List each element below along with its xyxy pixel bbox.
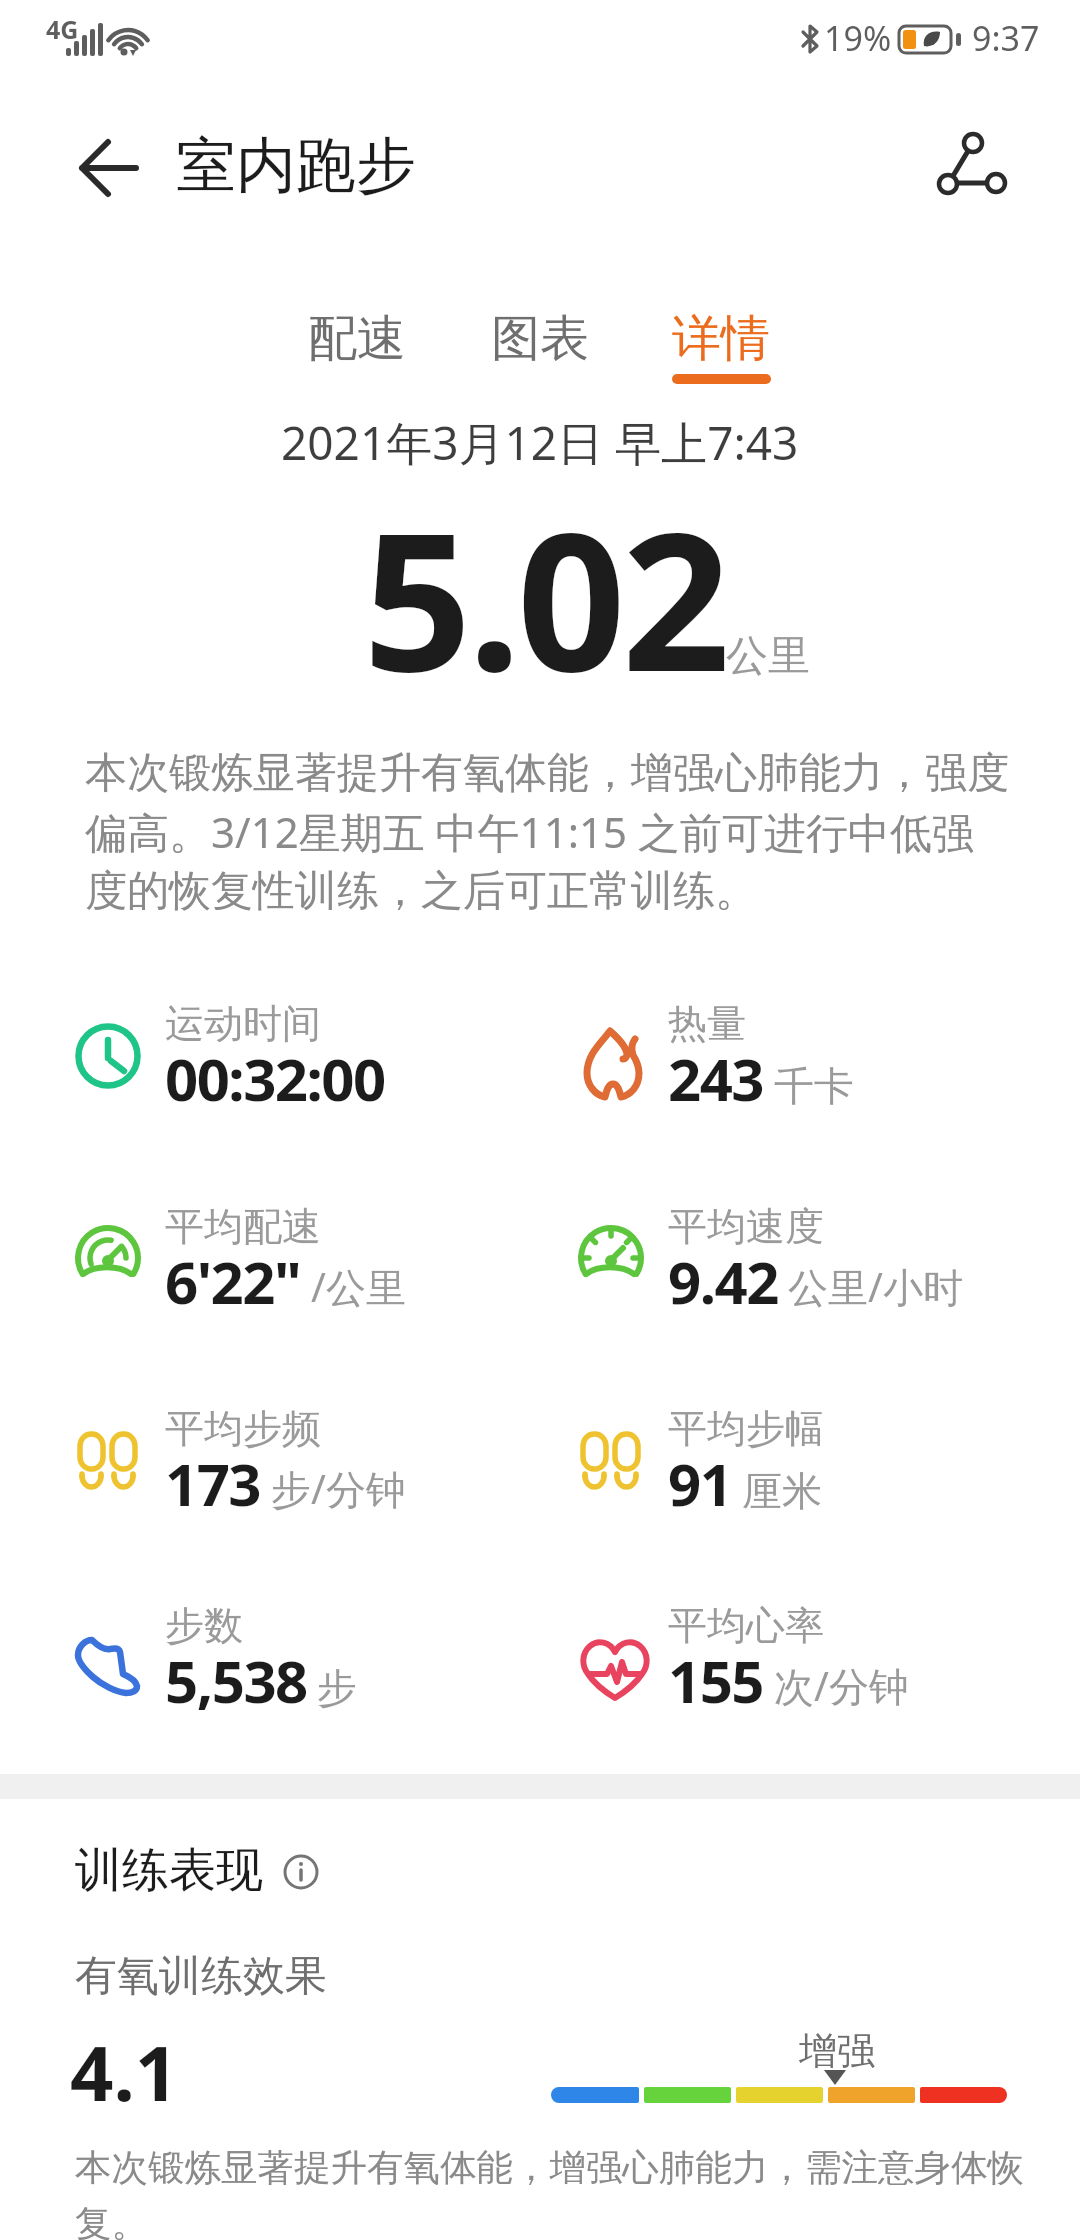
- staticText: 详情: [672, 308, 770, 370]
- staticText: 平均配速: [165, 1202, 321, 1251]
- staticText: 平均步幅: [668, 1404, 824, 1453]
- button[interactable]: [283, 1854, 323, 1894]
- button[interactable]: 图表: [190, 308, 890, 370]
- button[interactable]: 配速: [7, 308, 707, 370]
- staticText: 4G: [46, 12, 79, 46]
- staticText: 步数: [165, 1601, 243, 1650]
- staticText: 有氧训练效果: [75, 1950, 327, 2003]
- staticText: 热量: [668, 999, 746, 1048]
- staticText: 厘米: [742, 1466, 822, 1516]
- staticText: 千卡: [774, 1061, 854, 1111]
- staticText: 训练表现: [75, 1841, 263, 1900]
- staticText: 243: [668, 1039, 764, 1118]
- staticText: 步/分钟: [271, 1461, 406, 1516]
- staticText: 室内跑步: [176, 128, 416, 204]
- staticText: 配速: [308, 308, 406, 370]
- staticText: 次/分钟: [774, 1658, 909, 1713]
- staticText: 平均速度: [668, 1202, 824, 1251]
- staticText: 9.42: [668, 1242, 778, 1321]
- staticText: 2021年3月12日 早上7:43: [281, 411, 799, 474]
- staticText: 步: [317, 1663, 357, 1713]
- staticText: 公里/小时: [788, 1259, 963, 1314]
- staticText: 19%: [824, 15, 892, 61]
- staticText: 本次锻炼显著提升有氧体能，增强心肺能力，需注意身体恢 复。: [75, 2145, 1024, 2240]
- button[interactable]: [920, 120, 1030, 220]
- staticText: 6'22": [165, 1242, 301, 1321]
- staticText: 9:37: [972, 15, 1040, 61]
- staticText: 173: [165, 1444, 261, 1523]
- staticText: 4.1: [70, 2020, 179, 2124]
- staticText: 运动时间: [165, 999, 321, 1048]
- staticText: 公里: [726, 630, 810, 683]
- staticText: /公里: [311, 1259, 406, 1314]
- staticText: 增强: [799, 2027, 875, 2075]
- staticText: 155: [668, 1641, 764, 1720]
- staticText: 5,538: [165, 1641, 307, 1720]
- button[interactable]: 详情: [371, 308, 1071, 370]
- staticText: 平均步频: [165, 1404, 321, 1453]
- button[interactable]: [60, 130, 160, 210]
- staticText: 91: [668, 1444, 732, 1523]
- staticText: 图表: [491, 308, 589, 370]
- staticText: 5.02: [363, 468, 727, 727]
- staticText: 00:32:00: [165, 1039, 385, 1118]
- staticText: 平均心率: [668, 1601, 824, 1650]
- staticText: 本次锻炼显著提升有氧体能，增强心肺能力，强度 偏高。3/12星期五 中午11:1…: [85, 747, 1009, 918]
